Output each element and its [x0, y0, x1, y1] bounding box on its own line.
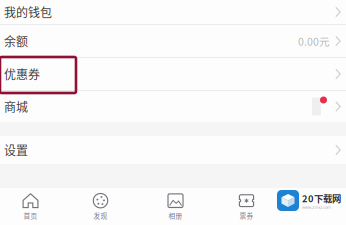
staticText: 0.00元: [298, 33, 330, 49]
staticText: 首页: [23, 211, 37, 220]
staticText: 我的钱包: [4, 3, 52, 21]
staticText: 余额: [4, 32, 28, 50]
button[interactable]: 设置: [0, 136, 346, 164]
staticText: 商城: [4, 98, 28, 115]
staticText: 相册: [168, 211, 182, 220]
button[interactable]: 票券: [211, 188, 282, 225]
button[interactable]: 余额: [0, 25, 346, 57]
button[interactable]: 首页: [0, 188, 61, 225]
button[interactable]: 商城: [0, 91, 346, 122]
staticText: 发现: [93, 211, 107, 220]
button[interactable]: 优惠券: [0, 58, 346, 90]
staticText: 票券: [239, 211, 253, 220]
staticText: 优惠券: [4, 65, 40, 83]
button[interactable]: 我的钱包: [0, 0, 346, 24]
staticText: 设置: [4, 141, 28, 159]
staticText: www.20xz.com: [302, 205, 331, 210]
staticText: 20下载网: [302, 191, 341, 205]
button[interactable]: 相册: [140, 188, 211, 225]
button[interactable]: 发现: [61, 188, 140, 225]
